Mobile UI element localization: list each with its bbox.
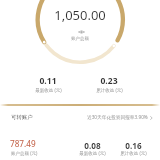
staticText: 累计收益 (元) <box>120 150 147 156</box>
staticText: 787.49 <box>10 138 36 149</box>
staticText: 最新收益 (元) <box>35 87 62 93</box>
staticText: 0.11 <box>39 75 57 87</box>
staticText: 0.16 <box>125 140 142 151</box>
staticText: 账户总额 <box>71 36 89 42</box>
staticText: 最新收益 (元) <box>79 150 106 156</box>
staticText: 0.08 <box>84 140 101 151</box>
staticText: 0.23 <box>100 75 118 87</box>
staticText: 1,050.00 <box>54 6 106 24</box>
staticText: 可转账户 <box>11 114 33 121</box>
staticText: 账户总额 (元) <box>11 150 38 156</box>
button[interactable]: 可转账户 <box>4 108 156 122</box>
staticText: 近30天年化投资回报率3.90% <box>87 114 148 120</box>
staticText: 累计收益 (元) <box>96 87 123 93</box>
button[interactable]: Toggle balance visibility <box>74 27 88 37</box>
